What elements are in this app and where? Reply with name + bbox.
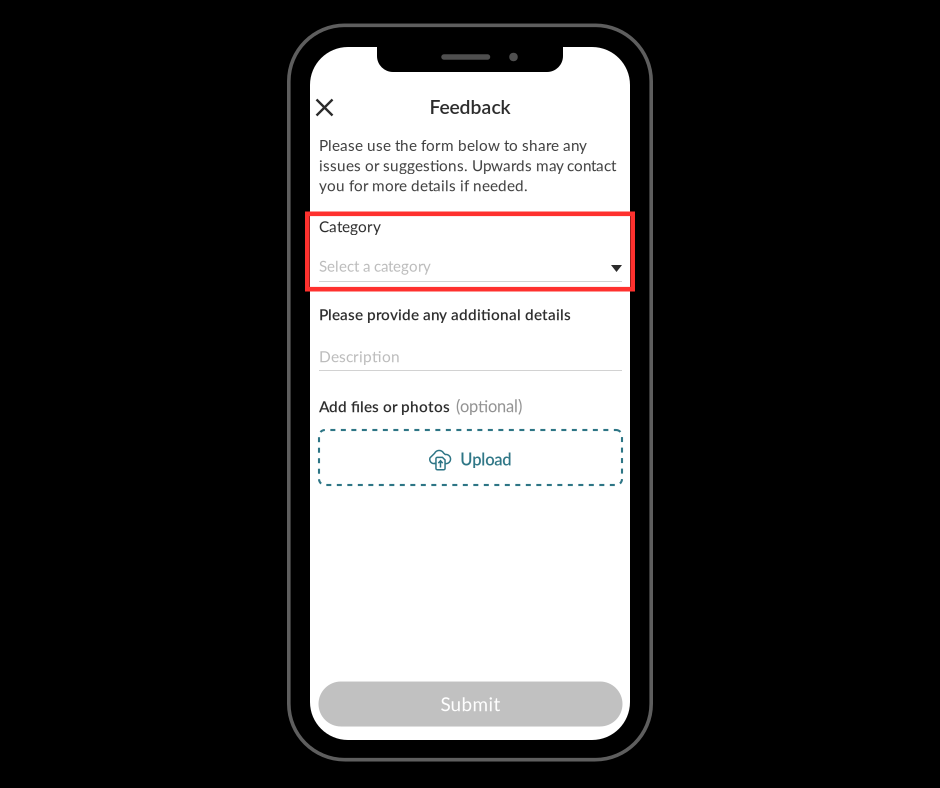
staticText: Please provide any additional details [319,305,571,323]
staticText: (optional) [456,396,522,416]
staticText: Description [319,347,400,366]
staticText: Upload [460,449,511,469]
button[interactable]: Description [319,341,622,371]
staticText: Category [319,217,381,235]
button[interactable]: Select a category [319,250,622,282]
button[interactable]: Upload [319,430,622,485]
staticText: Add files or photos [319,397,450,415]
staticText: Feedback [429,95,510,118]
button[interactable]: Submit [318,681,622,726]
button[interactable]: Close [308,91,340,123]
staticText: Select a category [319,257,431,275]
staticText: Please use the form below to share any i… [319,136,616,195]
staticText: Submit [440,693,500,715]
